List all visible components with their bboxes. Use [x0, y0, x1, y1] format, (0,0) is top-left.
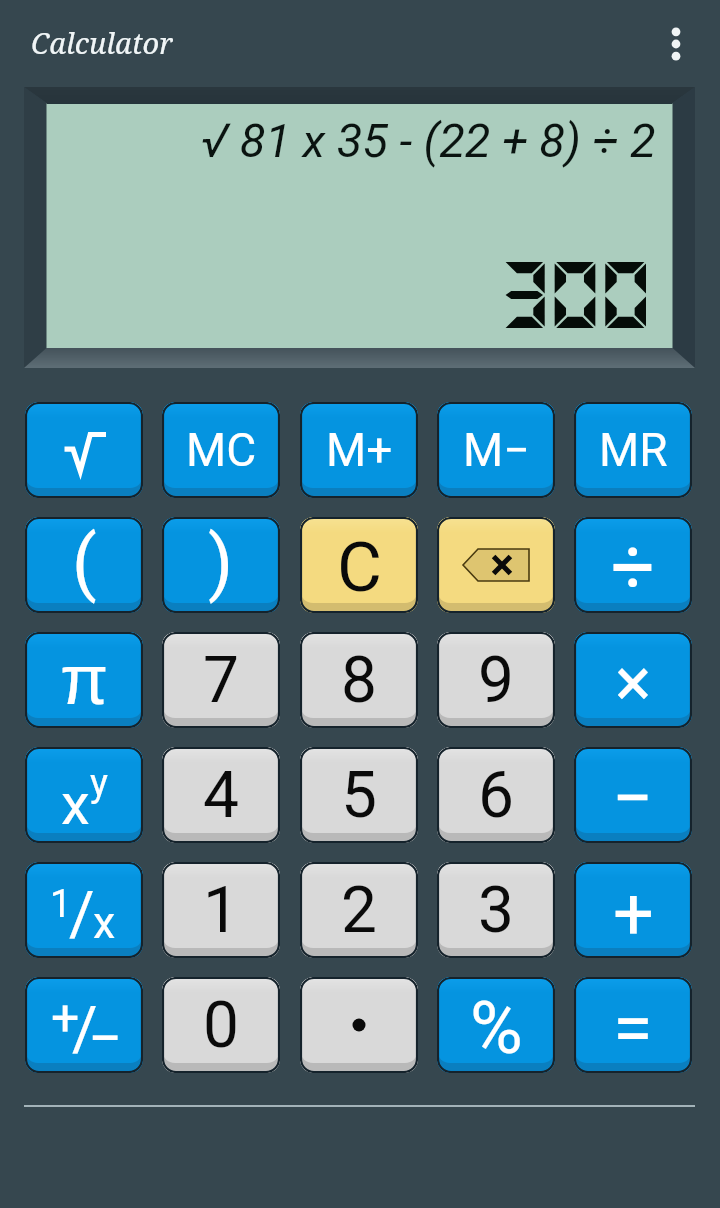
- staticText: ): [208, 520, 234, 604]
- staticText: y: [90, 761, 108, 806]
- staticText: /: [69, 877, 95, 950]
- staticText: x: [93, 896, 116, 949]
- button[interactable]: M−: [437, 402, 555, 498]
- button[interactable]: MR: [574, 402, 692, 498]
- button[interactable]: 1: [162, 862, 280, 958]
- button[interactable]: one over x: [25, 862, 143, 958]
- staticText: =: [613, 986, 653, 1070]
- staticText: /: [72, 992, 98, 1065]
- staticText: (: [72, 520, 97, 604]
- staticText: 2: [341, 873, 377, 948]
- staticText: 1: [50, 882, 72, 927]
- button[interactable]: =: [574, 977, 692, 1073]
- button[interactable]: 2: [300, 862, 418, 958]
- button[interactable]: Square root: [25, 402, 143, 498]
- button[interactable]: ×: [574, 632, 692, 728]
- staticText: 7: [203, 643, 239, 718]
- staticText: +: [613, 871, 654, 955]
- staticText: ÷: [611, 523, 655, 613]
- button[interactable]: 4: [162, 747, 280, 843]
- button[interactable]: M+: [300, 402, 418, 498]
- staticText: %: [470, 986, 523, 1070]
- staticText: M+: [326, 423, 393, 477]
- staticText: 0: [203, 988, 239, 1063]
- staticText: 3: [478, 873, 514, 948]
- staticText: π: [60, 641, 109, 719]
- button[interactable]: −: [574, 747, 692, 843]
- button[interactable]: 3: [437, 862, 555, 958]
- staticText: x: [61, 770, 90, 838]
- button[interactable]: (: [25, 517, 143, 613]
- staticText: Calculator: [31, 23, 173, 62]
- staticText: ×: [615, 643, 652, 723]
- button[interactable]: +: [574, 862, 692, 958]
- button[interactable]: plus minus: [25, 977, 143, 1073]
- button[interactable]: C: [300, 517, 418, 613]
- button[interactable]: decimal point: [300, 977, 418, 1073]
- button[interactable]: MC: [162, 402, 280, 498]
- staticText: 6: [478, 758, 514, 833]
- staticText: MR: [599, 423, 668, 477]
- staticText: C: [337, 527, 382, 608]
- button[interactable]: ÷: [574, 517, 692, 613]
- staticText: 1: [203, 873, 239, 948]
- button[interactable]: %: [437, 977, 555, 1073]
- button[interactable]: ): [162, 517, 280, 613]
- staticText: M−: [463, 423, 530, 477]
- button[interactable]: More options: [652, 20, 700, 68]
- staticText: +: [51, 989, 80, 1048]
- staticText: √ 81 x 35 - (22 + 8) ÷ 2: [201, 113, 656, 168]
- staticText: −: [88, 1003, 123, 1073]
- button[interactable]: x to the power of y: [25, 747, 143, 843]
- button[interactable]: 7: [162, 632, 280, 728]
- button[interactable]: 6: [437, 747, 555, 843]
- staticText: −: [612, 756, 654, 840]
- staticText: MC: [186, 423, 257, 477]
- button[interactable]: 0: [162, 977, 280, 1073]
- button[interactable]: 5: [300, 747, 418, 843]
- staticText: 9: [478, 643, 514, 718]
- button[interactable]: Backspace: [437, 517, 555, 613]
- staticText: 4: [203, 758, 239, 833]
- button[interactable]: π: [25, 632, 143, 728]
- button[interactable]: 8: [300, 632, 418, 728]
- button[interactable]: 9: [437, 632, 555, 728]
- staticText: 5: [341, 758, 377, 833]
- staticText: 8: [341, 643, 377, 718]
